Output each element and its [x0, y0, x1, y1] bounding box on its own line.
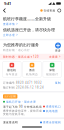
- staticText: 为您推荐的出行服务: [3, 42, 39, 47]
- staticText: 保险: [49, 68, 55, 72]
- button[interactable]: 复制: [55, 81, 61, 84]
- staticText: 退改签说明: [3, 121, 18, 124]
- button[interactable]: 接送机: [3, 61, 21, 77]
- staticText: 9:41: [4, 1, 11, 6]
- button[interactable]: 值机选座已开放，请尽快办理: [3, 28, 61, 37]
- staticText: · 起飞前 24 小时以上免费退票 · 起飞前 2 小时内收取 30% 手续费 …: [3, 125, 50, 130]
- staticText: 在线客服: [44, 9, 56, 12]
- staticText: 专车直达: [6, 73, 18, 76]
- staticText: 机场地图: [46, 109, 58, 113]
- staticText: 去看看 >: [49, 55, 61, 58]
- button[interactable]: 返回: [3, 8, 7, 13]
- staticText: 酒店: [29, 68, 35, 72]
- staticText: 值机选座已开放，请尽快办理: [3, 28, 55, 32]
- button[interactable]: 在线客服: [40, 9, 56, 12]
- button[interactable]: 航班行李额度——全新升级: [3, 16, 61, 26]
- staticText: 航班行李额度——全新升级: [3, 16, 51, 21]
- staticText: 请于起飞前 90 分钟抵达机场: [3, 105, 42, 108]
- staticText: 值机已开放 · 现在办理: [6, 100, 36, 103]
- staticText: 订单编号 8820 4471 9032: [3, 81, 42, 84]
- button[interactable]: 机场地图: [43, 109, 58, 113]
- button[interactable]: 更多: [56, 8, 61, 13]
- staticText: 机场周边: [26, 73, 38, 76]
- button[interactable]: 保险: [43, 61, 61, 77]
- staticText: 查看全部规则: [43, 121, 61, 124]
- staticText: 预订时间 2024-06-12 18:24: [3, 86, 44, 89]
- staticText: 携带有效身份证件，提前完成安检与登机手续。: [3, 109, 42, 116]
- button[interactable]: 值机已开放 · 现在办理: [3, 100, 36, 103]
- staticText: 更多: [55, 49, 61, 52]
- staticText: 航延赔付: [46, 73, 58, 76]
- button[interactable]: 酒店: [23, 61, 41, 77]
- button[interactable]: 查看全部规则: [40, 121, 61, 124]
- staticText: 查看详情 >: [3, 22, 18, 26]
- staticText: 查看登机口: [46, 105, 61, 108]
- staticText: 限时特惠 · 最高立减￥120: [3, 55, 39, 58]
- button[interactable]: 更多: [55, 42, 61, 52]
- staticText: 精选好物 · 省心出行: [3, 48, 30, 52]
- staticText: 接送机: [7, 68, 16, 72]
- staticText: 复制: [55, 81, 61, 84]
- staticText: 立即办理 >: [3, 33, 18, 37]
- staticText: 出行提醒: [4, 95, 16, 98]
- button[interactable]: 查看登机口: [43, 105, 61, 108]
